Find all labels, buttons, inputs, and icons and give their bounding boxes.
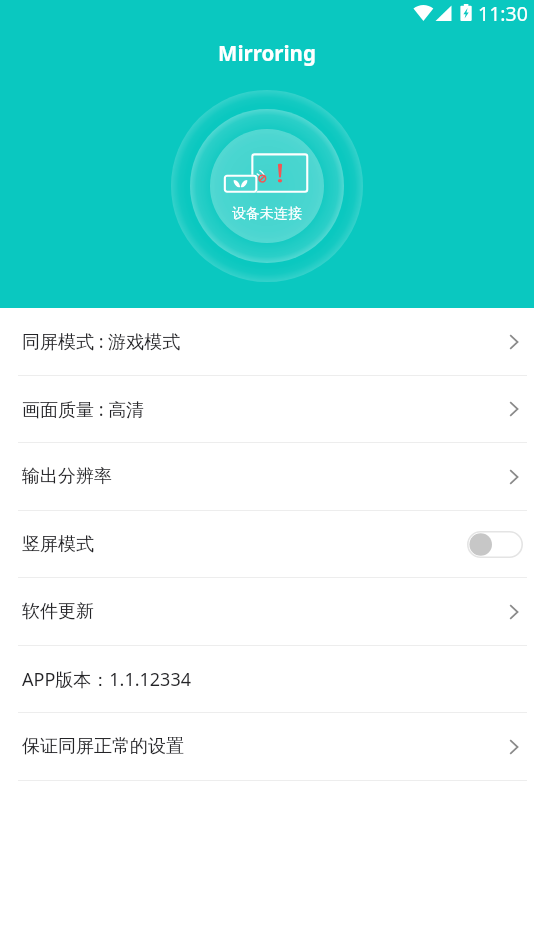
staticText: 竖屏模式 (22, 533, 94, 556)
button[interactable]: 输出分辨率 (0, 443, 534, 511)
button[interactable]: 同屏模式 : 游戏模式 (0, 308, 534, 376)
staticText: APP版本：1.1.12334 (22, 667, 192, 692)
other: Open (506, 604, 522, 620)
staticText: Mirroring (0, 39, 534, 67)
other: Portrait mode toggle (467, 531, 523, 558)
other: Open (506, 334, 522, 350)
other: Open (506, 469, 522, 485)
button[interactable]: 竖屏模式 (0, 511, 534, 578)
staticText: 输出分辨率 (22, 465, 112, 488)
staticText: 11:30 (478, 0, 528, 27)
staticText: 保证同屏正常的设置 (22, 735, 184, 758)
other: Open (506, 401, 522, 417)
staticText: 设备未连接 (232, 205, 302, 223)
button[interactable]: 画面质量 : 高清 (0, 376, 534, 443)
staticText: 画面质量 : 高清 (22, 397, 145, 422)
staticText: 软件更新 (22, 600, 94, 623)
other: Open (506, 739, 522, 755)
button[interactable]: 保证同屏正常的设置 (0, 713, 534, 781)
button[interactable]: APP版本：1.1.12334 (0, 646, 534, 713)
button[interactable]: 软件更新 (0, 578, 534, 646)
staticText: 同屏模式 : 游戏模式 (22, 329, 181, 354)
